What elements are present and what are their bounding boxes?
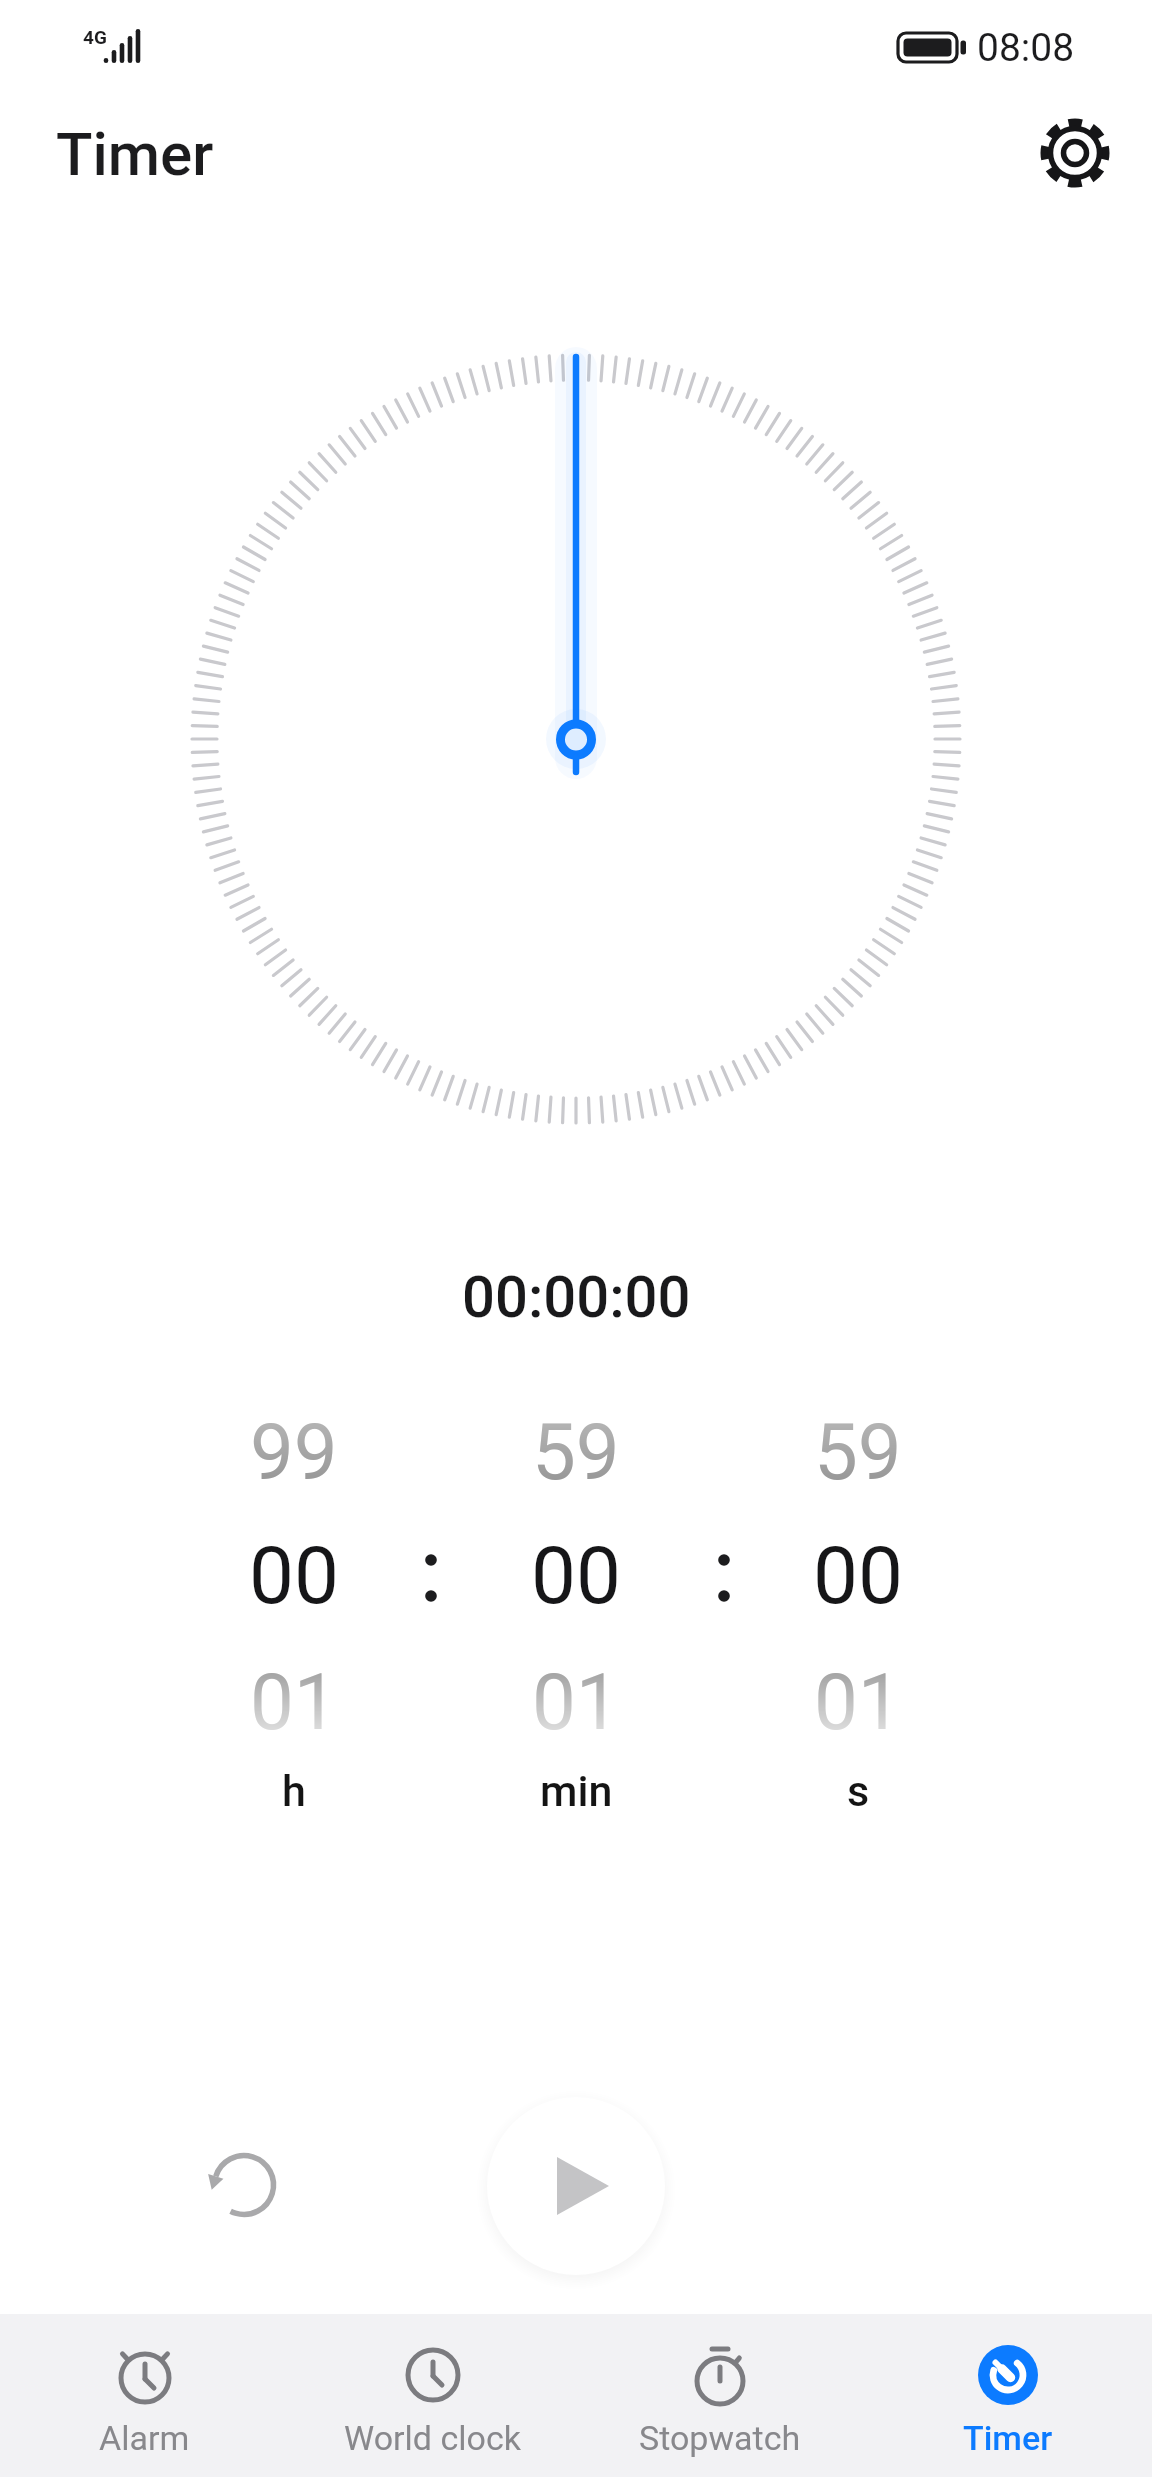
staticText: 00	[249, 1529, 339, 1623]
staticText: 4G	[83, 26, 107, 48]
staticText: 59	[532, 1407, 620, 1498]
staticText: min	[540, 1766, 613, 1816]
staticText: Alarm	[99, 2418, 190, 2458]
staticText: Timer	[963, 2418, 1053, 2458]
button[interactable]: Alarm	[0, 2314, 288, 2477]
staticText: 08:08	[977, 25, 1075, 71]
staticText: s	[847, 1766, 870, 1816]
staticText: 99	[250, 1407, 338, 1498]
staticText: 01	[814, 1657, 902, 1748]
button[interactable]	[487, 2097, 665, 2275]
staticText: 00	[531, 1529, 621, 1623]
button[interactable]: World clock	[288, 2314, 576, 2477]
staticText: Timer	[56, 119, 214, 189]
staticText: 59	[814, 1407, 902, 1498]
button[interactable]	[1035, 113, 1115, 193]
button[interactable]	[196, 2137, 292, 2233]
staticText: 00	[813, 1529, 903, 1623]
staticText: 00:00:00	[462, 1263, 691, 1331]
staticText: 01	[532, 1657, 620, 1748]
button[interactable]: Timer	[864, 2314, 1152, 2477]
staticText: h	[282, 1766, 306, 1816]
staticText: 01	[250, 1657, 338, 1748]
staticText: Stopwatch	[639, 2418, 801, 2458]
staticText: World clock	[344, 2418, 521, 2458]
button[interactable]: Stopwatch	[576, 2314, 864, 2477]
